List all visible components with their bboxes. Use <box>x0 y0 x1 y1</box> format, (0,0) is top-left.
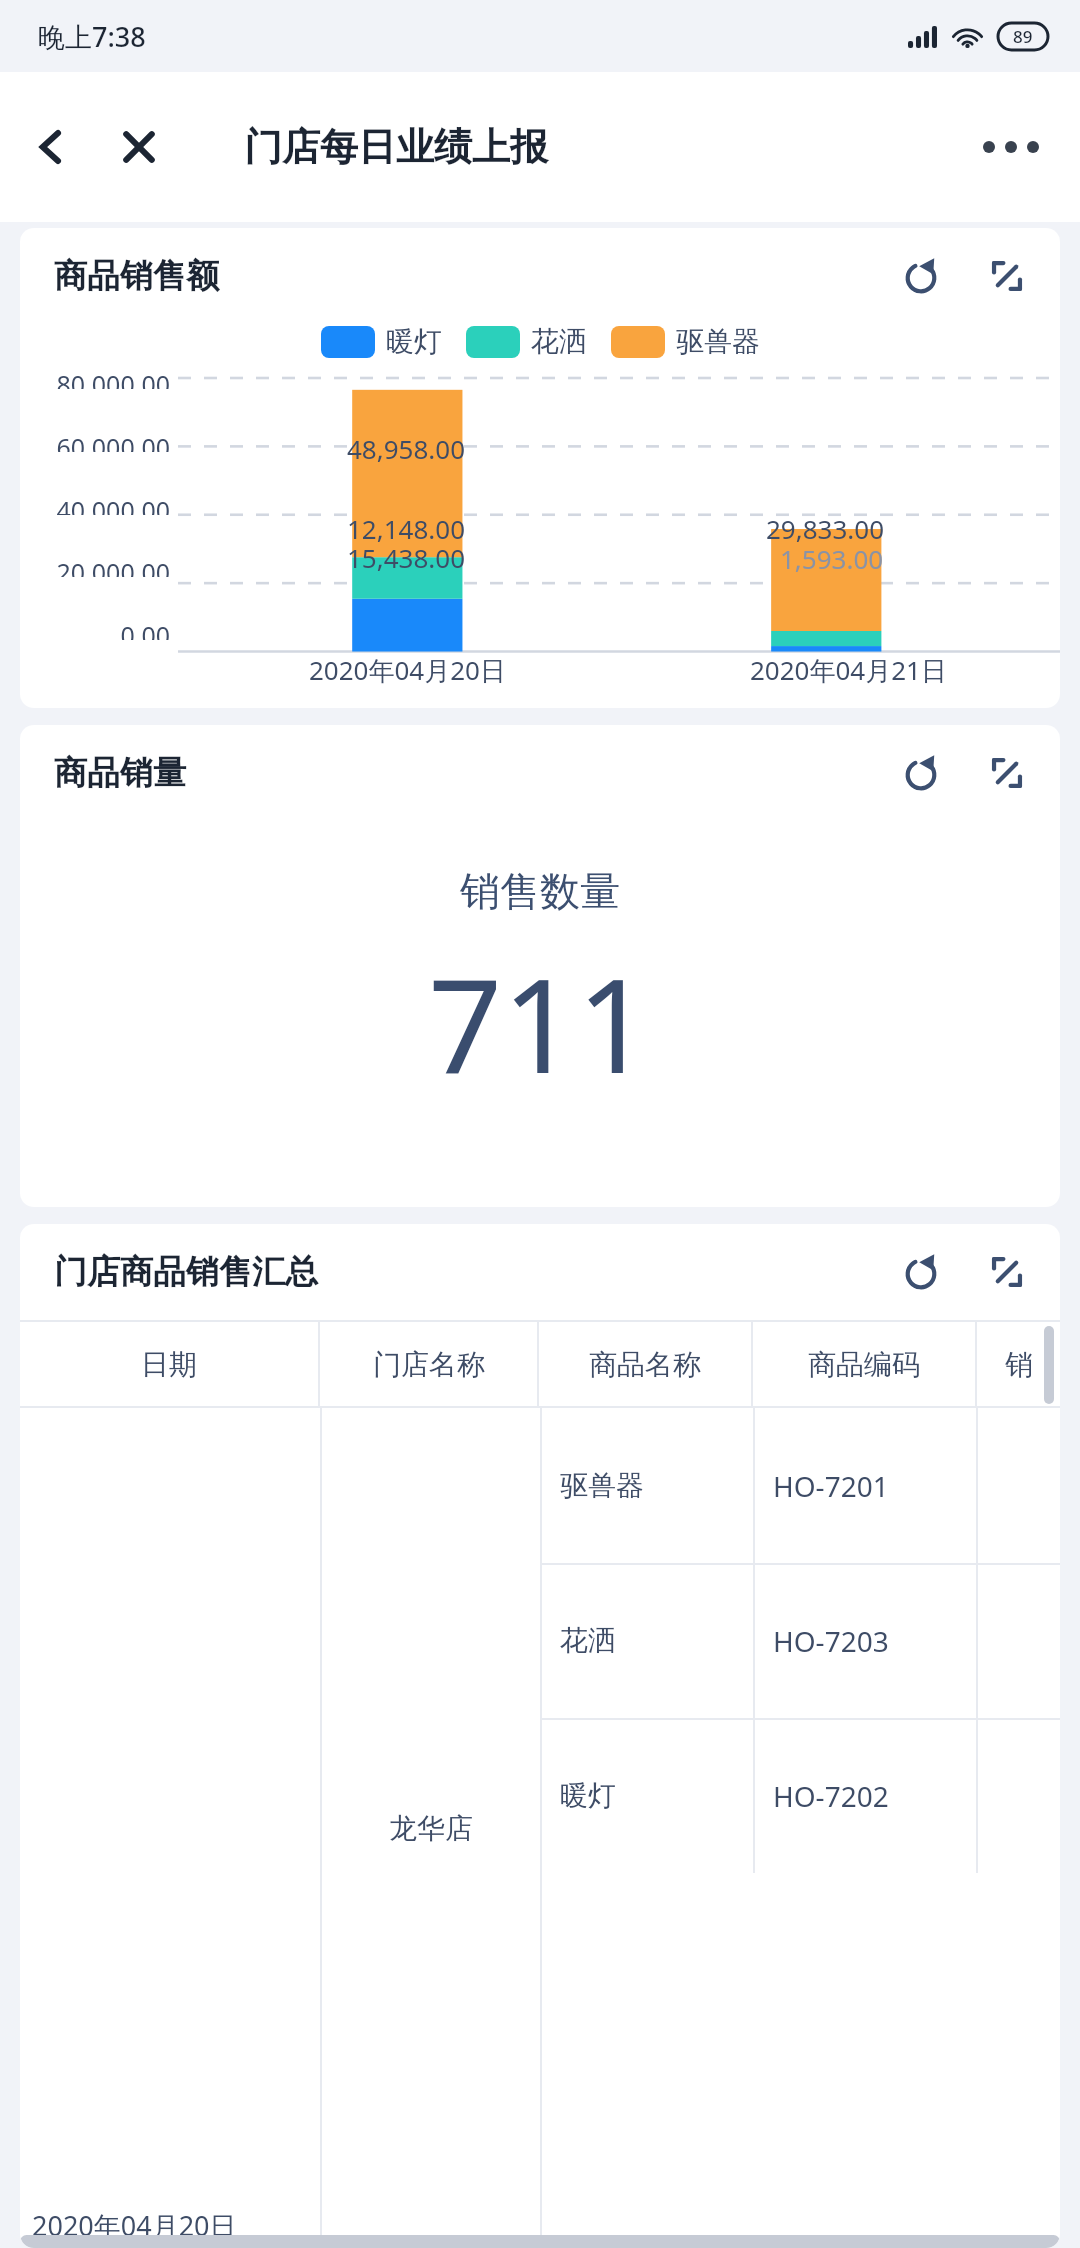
staticText: 60,000.00 <box>56 430 170 452</box>
button[interactable]: Refresh <box>888 243 954 309</box>
staticText: 暖灯 <box>560 1778 616 1813</box>
staticText: 龙华店 <box>389 1811 473 1846</box>
button[interactable]: Refresh <box>888 1239 954 1305</box>
staticText: 商品名称 <box>589 1347 701 1382</box>
staticText: 12,148.00 <box>347 511 466 546</box>
button[interactable]: 商品销售额 <box>20 228 1060 708</box>
staticText: 0.00 <box>120 618 170 640</box>
staticText: 711 <box>428 934 652 1111</box>
staticText: 花洒 <box>531 324 587 359</box>
button[interactable]: More options <box>968 116 1054 178</box>
staticText: 商品销售额 <box>54 255 219 297</box>
staticText: 门店名称 <box>373 1347 485 1382</box>
staticText: HO-7203 <box>773 1622 889 1660</box>
button[interactable]: Fullscreen <box>974 1239 1040 1305</box>
staticText: HO-7202 <box>773 1777 889 1815</box>
staticText: 驱兽器 <box>676 324 760 359</box>
button[interactable]: Fullscreen <box>974 740 1040 806</box>
staticText: 1,593.00 <box>780 541 884 576</box>
staticText: 销售数量 <box>460 866 620 916</box>
staticText: 2020年04月20日 <box>32 2207 237 2244</box>
staticText: 48,958.00 <box>347 431 466 466</box>
staticText: 销 <box>1005 1347 1033 1382</box>
button[interactable]: 商品销量 <box>20 725 1060 1207</box>
button[interactable]: Refresh <box>888 740 954 806</box>
staticText: 89 <box>1013 25 1033 48</box>
staticText: 2020年04月20日 <box>309 652 506 688</box>
staticText: 40,000.00 <box>56 493 170 515</box>
button[interactable]: Fullscreen <box>974 243 1040 309</box>
staticText: 暖灯 <box>386 324 442 359</box>
staticText: 15,438.00 <box>347 540 466 575</box>
staticText: 驱兽器 <box>560 1468 644 1503</box>
staticText: 2020年04月21日 <box>750 652 947 688</box>
staticText: 20,000.00 <box>56 555 170 577</box>
staticText: 门店每日业绩上报 <box>244 123 548 171</box>
staticText: 商品销量 <box>54 752 186 794</box>
button[interactable]: Close <box>108 116 170 178</box>
staticText: HO-7201 <box>773 1467 889 1505</box>
button[interactable]: Back <box>20 116 82 178</box>
staticText: 商品编码 <box>808 1347 920 1382</box>
staticText: 80,000.00 <box>56 367 170 389</box>
staticText: 晚上7:38 <box>38 18 146 55</box>
staticText: 日期 <box>141 1347 197 1382</box>
staticText: 门店商品销售汇总 <box>54 1251 318 1293</box>
button[interactable]: 门店商品销售汇总 <box>20 1224 1060 2248</box>
staticText: 花洒 <box>560 1623 616 1658</box>
staticText: 29,833.00 <box>766 511 885 546</box>
